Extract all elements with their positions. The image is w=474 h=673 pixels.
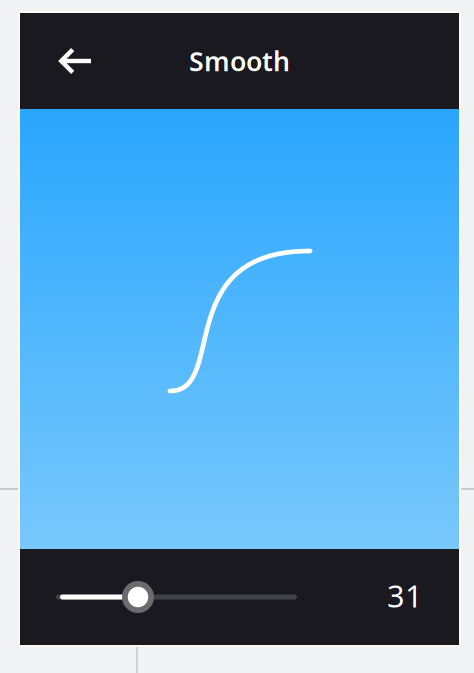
staticText: 31 bbox=[387, 575, 423, 616]
button[interactable]: Smoothing amount bbox=[60, 549, 301, 645]
button[interactable]: Back bbox=[20, 13, 111, 109]
staticText: Smooth bbox=[189, 43, 290, 79]
